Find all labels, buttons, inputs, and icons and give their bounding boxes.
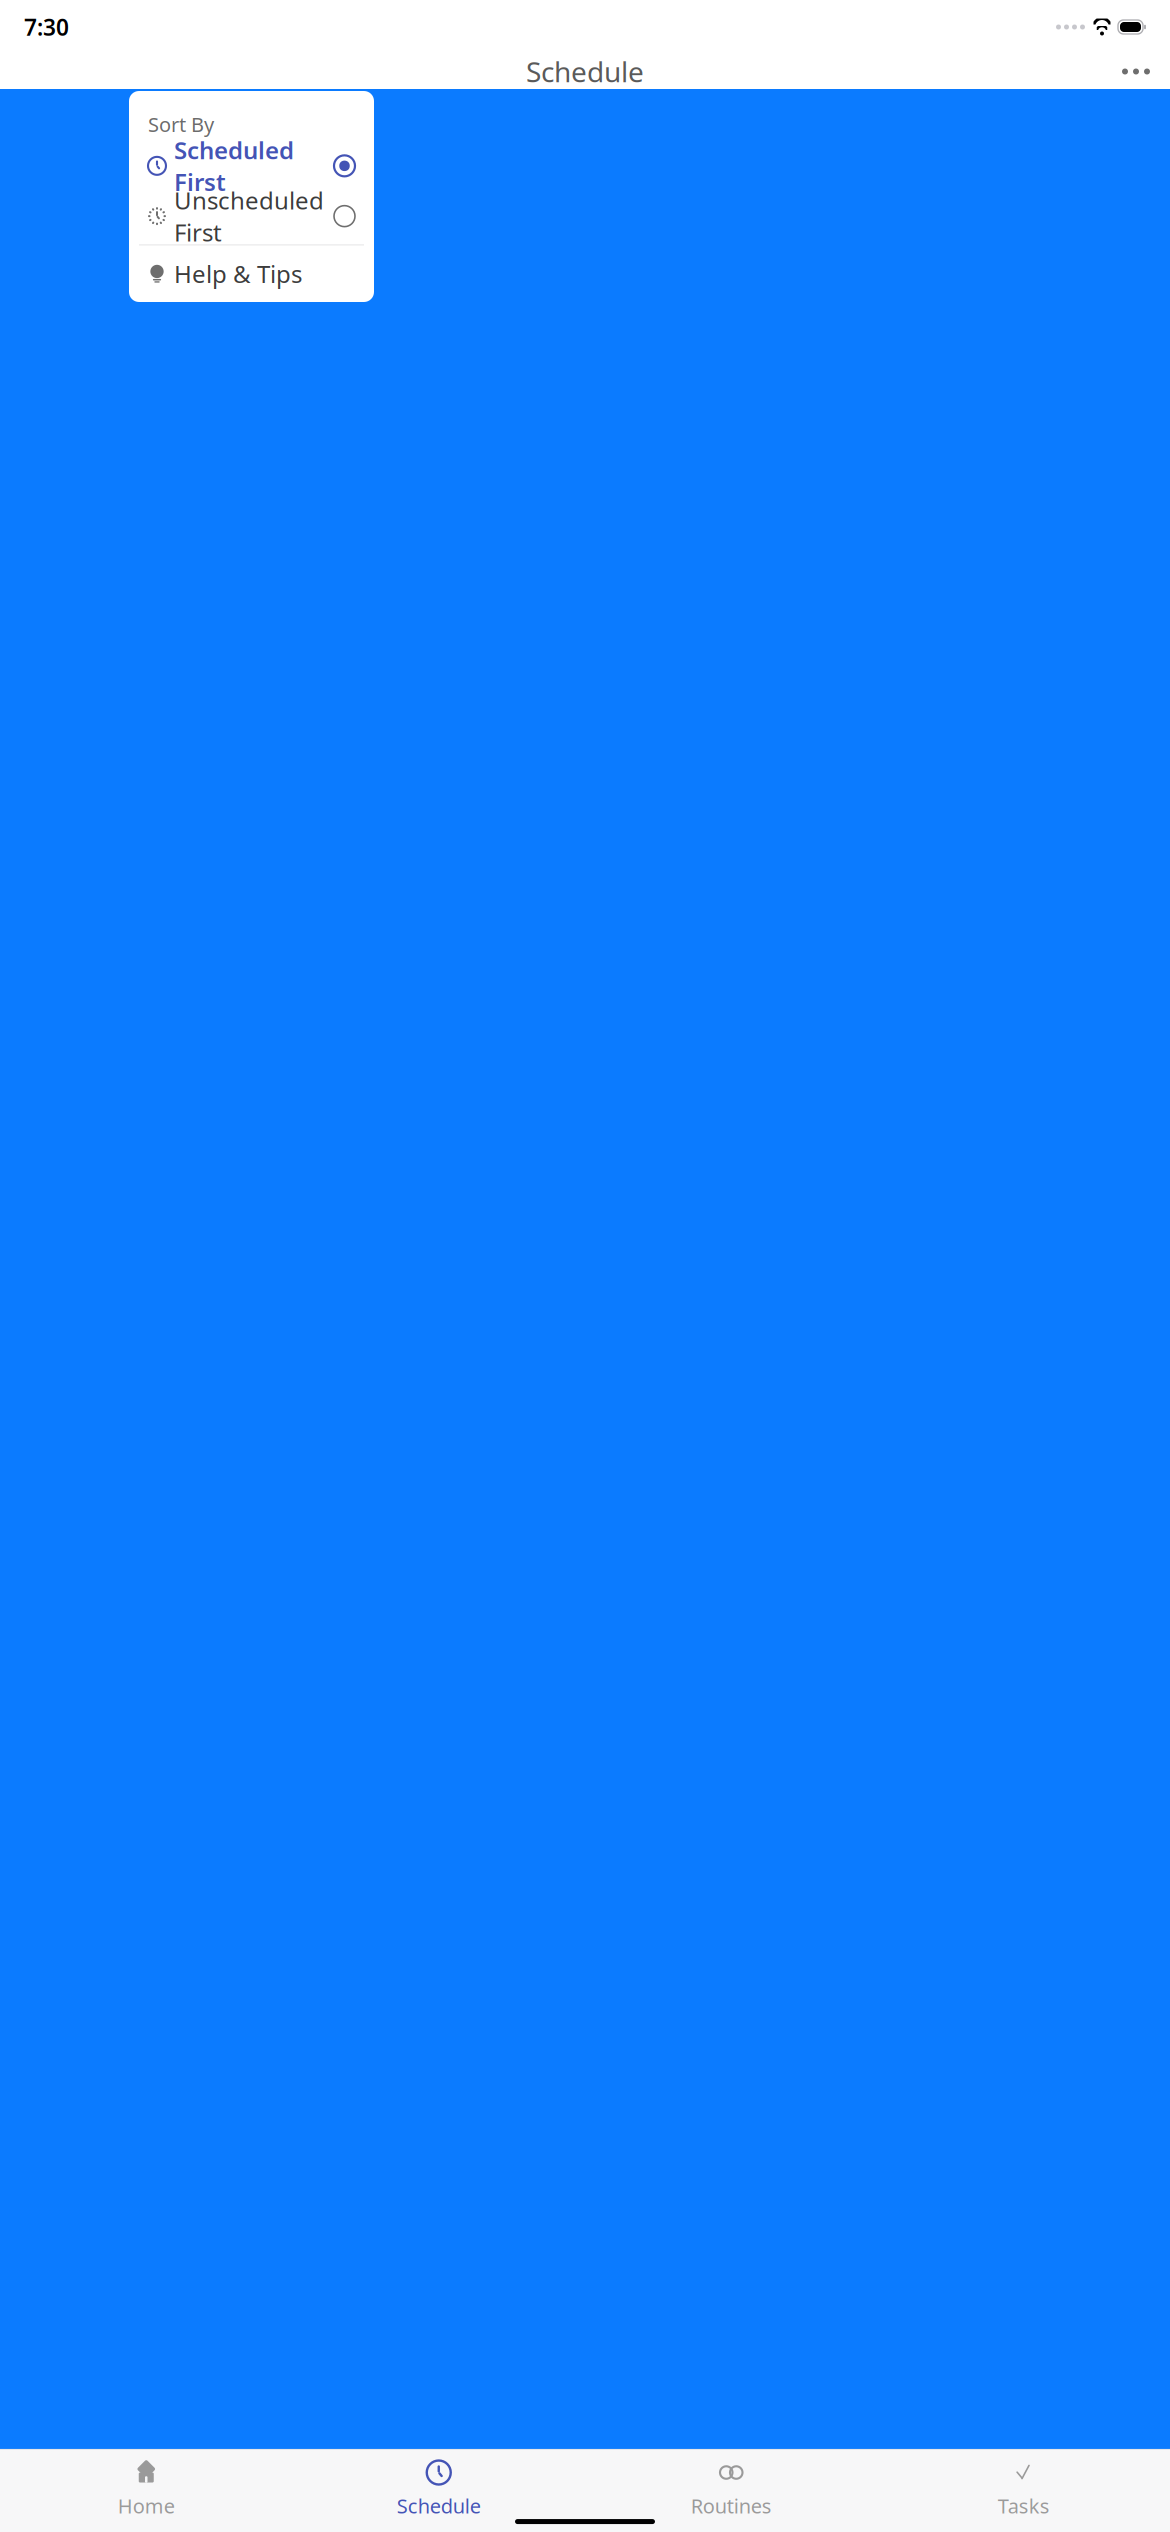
button[interactable]: Schedule [292,2449,585,2519]
staticText: Routines [691,2492,772,2519]
button[interactable]: Scheduled First [129,144,374,188]
staticText: Unscheduled First [174,184,324,248]
staticText: Schedule [526,53,644,90]
staticText: Help & Tips [174,258,302,290]
staticText: 7:30 [24,12,69,42]
staticText: Schedule [397,2492,481,2519]
button[interactable]: Routines [585,2449,877,2519]
button[interactable]: Unscheduled First [129,194,374,238]
staticText: Sort By [148,111,214,138]
button[interactable]: More options [1114,49,1158,93]
staticText: Scheduled First [174,134,294,198]
button[interactable]: Help & Tips [129,252,374,296]
staticText: Home [118,2492,175,2519]
staticText: Tasks [998,2492,1050,2519]
button[interactable]: Home [0,2449,292,2519]
button[interactable]: Tasks [877,2449,1170,2519]
